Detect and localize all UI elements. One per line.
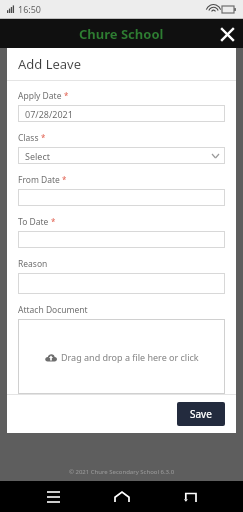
staticText: Attach Document: [18, 304, 88, 316]
button[interactable]: Back: [174, 481, 206, 512]
button[interactable]: Drag and drop a file here or click: [18, 319, 225, 394]
staticText: Chure School: [79, 25, 164, 43]
staticText: From Date: [18, 174, 60, 186]
staticText: *: [62, 174, 67, 185]
staticText: Drag and drop a file here or click: [61, 351, 199, 363]
staticText: Add Leave: [18, 55, 82, 73]
staticText: Class: [18, 132, 39, 144]
staticText: To Date: [18, 216, 49, 228]
staticText: 07/28/2021: [25, 108, 73, 120]
staticText: Apply Date: [18, 90, 62, 102]
staticText: Select: [25, 150, 50, 162]
staticText: Save: [190, 407, 212, 421]
button[interactable]: [18, 231, 225, 248]
button[interactable]: Save: [177, 402, 225, 426]
staticText: *: [41, 132, 46, 143]
staticText: *: [64, 90, 69, 101]
staticText: *: [51, 216, 56, 227]
button[interactable]: Home: [106, 481, 138, 512]
button[interactable]: [18, 273, 225, 294]
staticText: Reason: [18, 258, 48, 270]
staticText: 16:50: [18, 3, 42, 15]
button[interactable]: 07/28/2021: [18, 105, 225, 122]
button[interactable]: Select: [18, 147, 225, 164]
button[interactable]: Recent apps: [37, 481, 69, 512]
button[interactable]: Close: [217, 24, 237, 44]
staticText: © 2021 Chure Secondary School 6.3.0: [0, 468, 243, 476]
button[interactable]: [18, 189, 225, 206]
